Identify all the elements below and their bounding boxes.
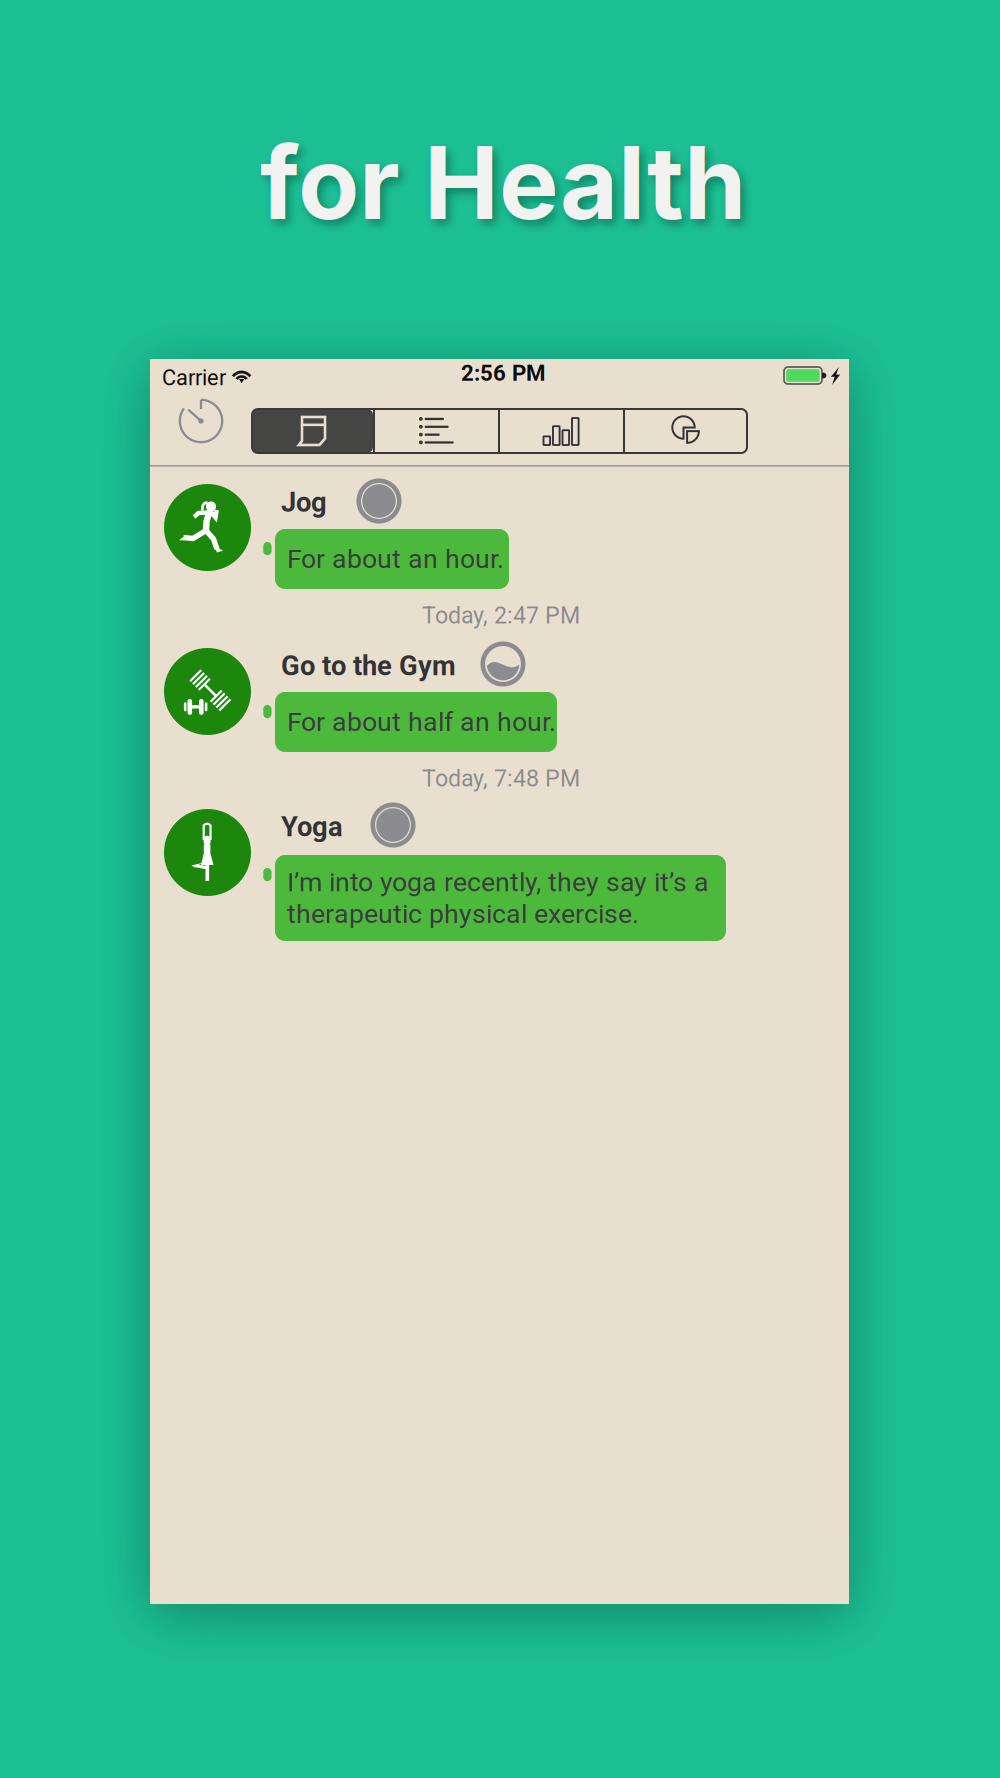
staticText: Yoga bbox=[281, 811, 343, 843]
staticText: Go to the Gym bbox=[281, 650, 456, 682]
button[interactable]: List bbox=[375, 409, 498, 453]
staticText: Carrier bbox=[162, 365, 226, 390]
staticText: Today, 2:47 PM bbox=[422, 602, 580, 629]
button[interactable]: Jog activity bbox=[164, 484, 251, 571]
button[interactable]: Go to the Gym activity bbox=[164, 648, 251, 735]
staticText: I’m into yoga recently, they say it’s a bbox=[287, 866, 709, 898]
staticText: therapeutic physical exercise. bbox=[287, 898, 639, 929]
button[interactable]: Not started bbox=[371, 803, 415, 847]
button[interactable]: Timer bbox=[179, 399, 223, 443]
staticText: For about half an hour. bbox=[287, 706, 556, 738]
staticText: For about an hour. bbox=[287, 543, 504, 575]
button[interactable]: For about an hour. bbox=[275, 529, 509, 589]
button[interactable]: For about half an hour. bbox=[275, 692, 557, 752]
staticText: for Health bbox=[260, 122, 746, 243]
button[interactable]: I’m into yoga recently, they say it’s a bbox=[275, 855, 726, 941]
button[interactable]: Not started bbox=[357, 479, 401, 523]
button[interactable]: Half complete bbox=[481, 642, 525, 686]
button[interactable]: Journal bbox=[251, 409, 373, 453]
staticText: Jog bbox=[281, 486, 327, 518]
button[interactable]: Summary bbox=[625, 409, 748, 453]
staticText: 2:56 PM bbox=[461, 360, 545, 386]
button[interactable]: Statistics bbox=[500, 409, 623, 453]
button[interactable]: Yoga activity bbox=[164, 809, 251, 896]
staticText: Today, 7:48 PM bbox=[422, 765, 580, 792]
